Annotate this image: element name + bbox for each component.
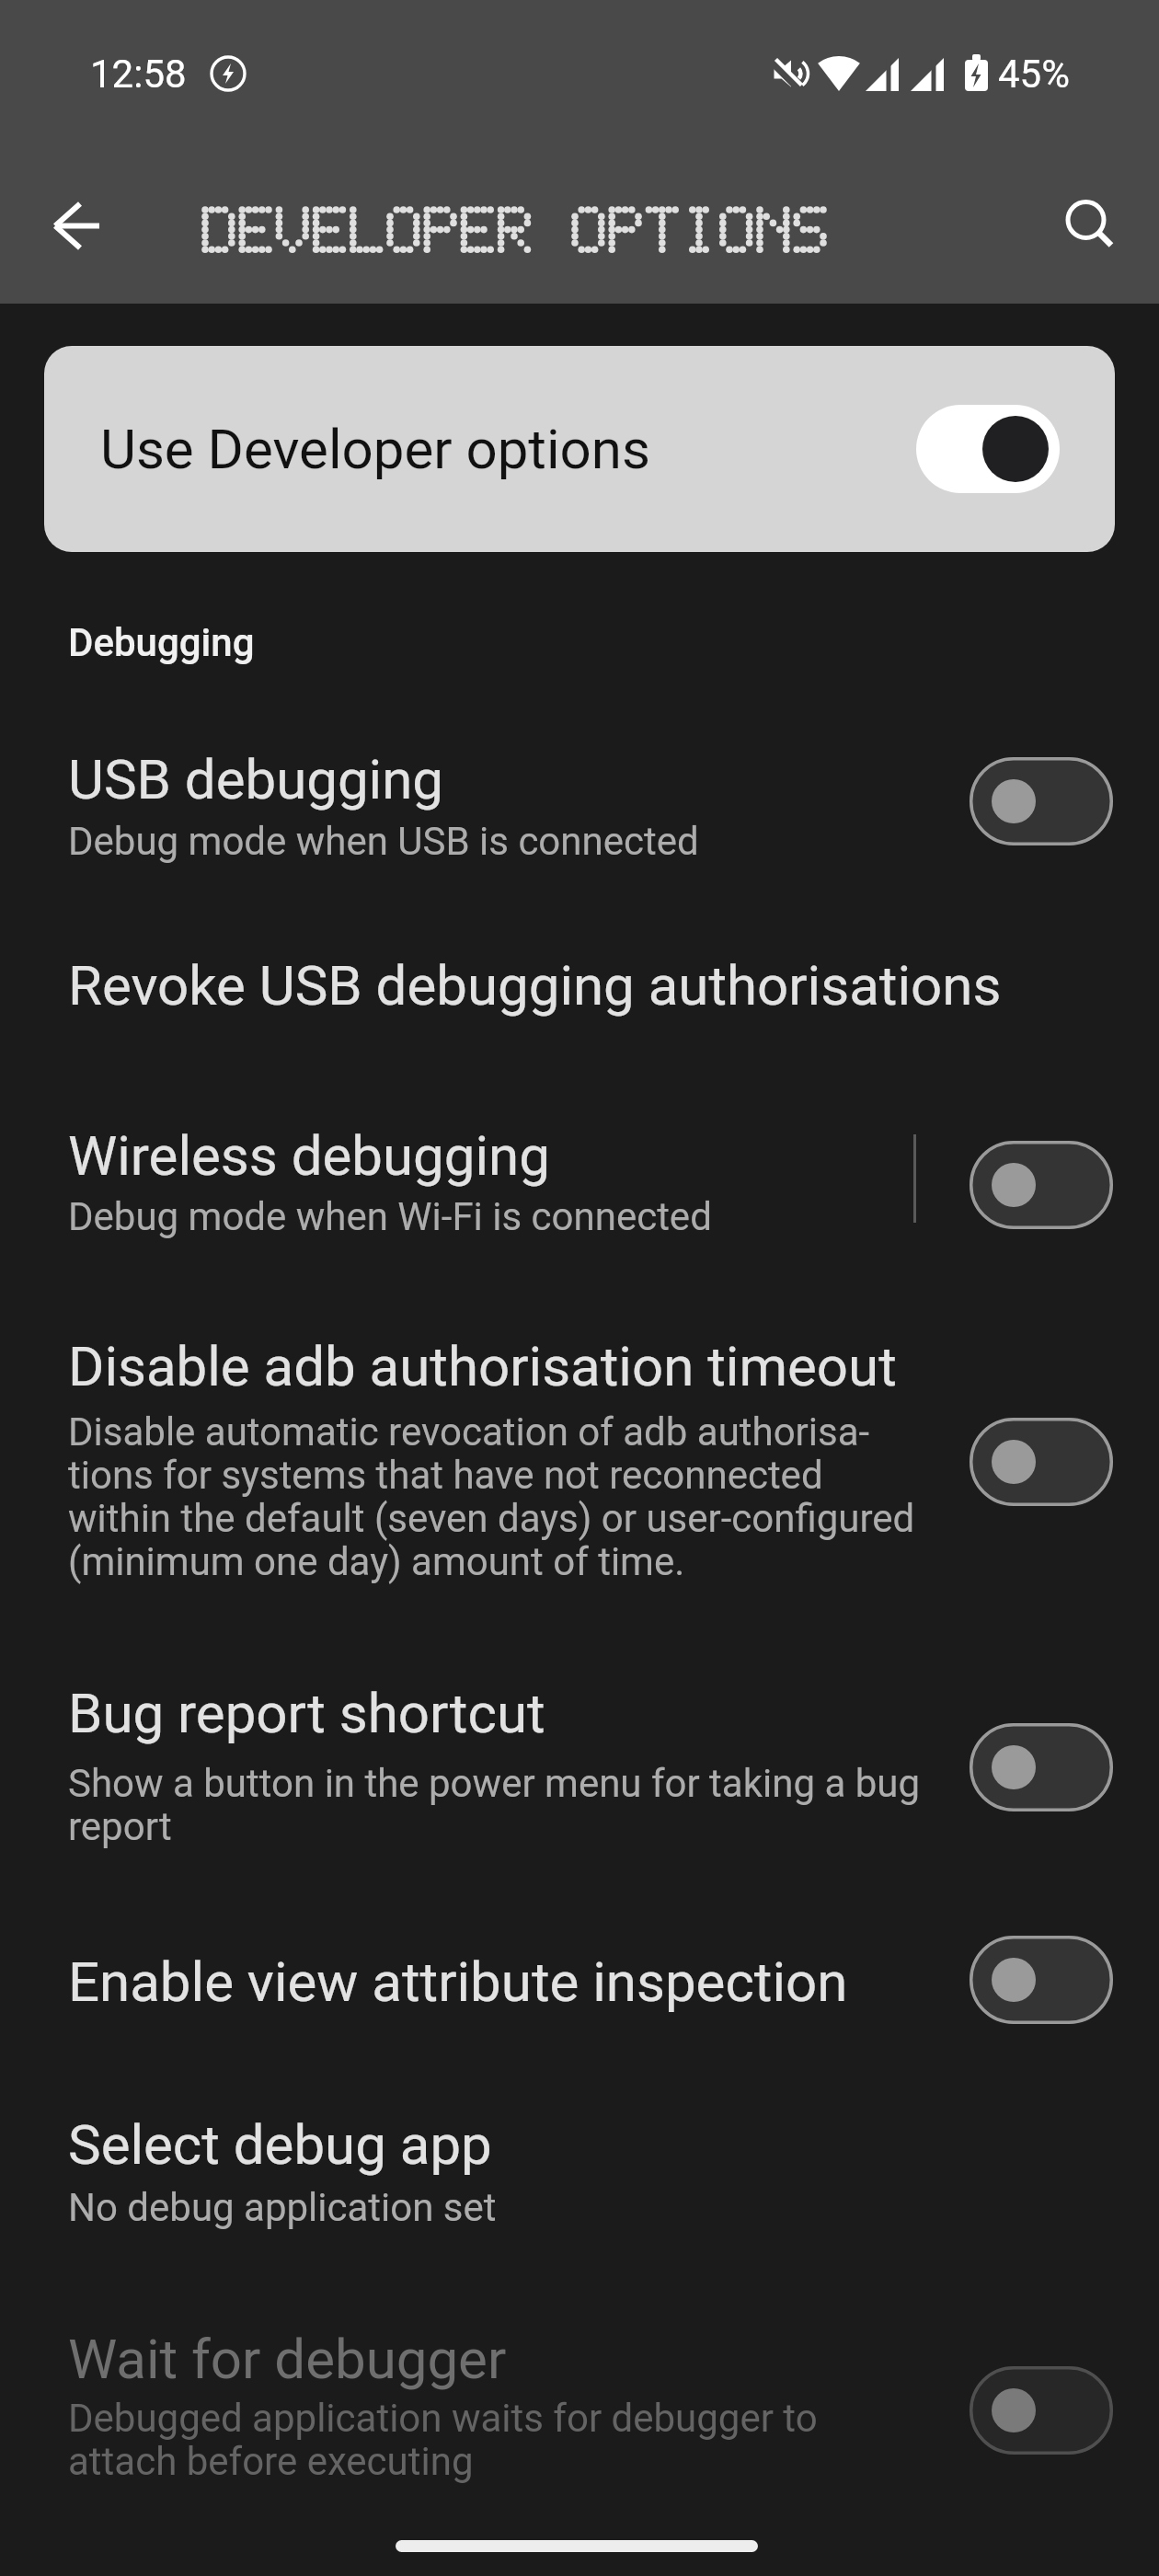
button[interactable] [970, 2366, 1113, 2455]
staticText: Disable adb authorisation timeout [68, 1334, 897, 1398]
button[interactable]: Select debug app [0, 2084, 1159, 2245]
staticText: Use Developer options [100, 417, 650, 481]
staticText: Debug mode when USB is connected [68, 819, 699, 864]
button[interactable]: Disable adb authorisation timeout [0, 1306, 1159, 1601]
staticText: Wireless debugging [68, 1123, 550, 1188]
button[interactable] [970, 1418, 1113, 1506]
staticText: Disable automatic revocation of adb auth… [68, 1411, 915, 1584]
button[interactable]: Bug report shortcut [0, 1656, 1159, 1868]
button[interactable] [1060, 193, 1115, 248]
button[interactable]: Revoke USB debugging authorisations [0, 929, 1159, 1076]
staticText: Show a button in the power menu for taki… [68, 1763, 920, 1849]
button[interactable] [970, 1723, 1113, 1811]
staticText: 12:58 [90, 52, 187, 97]
button[interactable] [52, 200, 103, 251]
staticText: Revoke USB debugging authorisations [68, 953, 1002, 1018]
staticText: Debug mode when Wi-Fi is connected [68, 1194, 712, 1239]
staticText: Debugged application waits for debugger … [68, 2398, 818, 2484]
button[interactable]: Wireless debugging [0, 1095, 1159, 1270]
staticText: Wait for debugger [68, 2327, 507, 2391]
button[interactable] [970, 1141, 1113, 1229]
staticText: 45% [998, 52, 1070, 97]
staticText: Select debug app [68, 2112, 492, 2177]
button[interactable]: Enable view attribute inspection [0, 1918, 1159, 2042]
staticText: Bug report shortcut [68, 1681, 545, 1745]
button[interactable] [970, 757, 1113, 845]
staticText: USB debugging [68, 747, 444, 811]
button[interactable]: Use Developer options [44, 346, 1115, 552]
staticText: Debugging [68, 620, 255, 665]
button[interactable] [970, 1936, 1113, 2024]
staticText: No debug application set [68, 2185, 497, 2230]
staticText: Enable view attribute inspection [68, 1949, 848, 2014]
button[interactable]: Wait for debugger [0, 2300, 1159, 2521]
button[interactable]: USB debugging [0, 718, 1159, 888]
